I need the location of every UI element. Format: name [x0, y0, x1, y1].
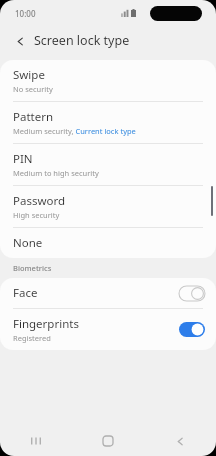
staticText: Fingerprints [13, 316, 79, 332]
staticText: Swipe [13, 67, 45, 83]
button[interactable]: Back [10, 31, 30, 51]
button[interactable]: Off [179, 286, 205, 301]
button[interactable]: Swipe [0, 60, 216, 101]
button[interactable]: Fingerprints [0, 309, 216, 350]
button[interactable]: Pattern [0, 102, 216, 143]
button[interactable]: Face [0, 278, 216, 308]
staticText: Medium to high security [13, 168, 99, 178]
staticText: Medium security, Current lock type [13, 126, 136, 136]
staticText: None [13, 235, 43, 251]
staticText: High security [13, 210, 60, 220]
staticText: 10:00 [15, 8, 36, 19]
button[interactable]: Back [144, 426, 216, 456]
staticText: No security [13, 84, 53, 94]
staticText: PIN [13, 151, 33, 167]
staticText: Screen lock type [34, 32, 130, 49]
button[interactable]: Home [72, 426, 144, 456]
button[interactable]: None [0, 228, 216, 258]
staticText: Biometrics [13, 263, 52, 273]
button[interactable]: Password [0, 186, 216, 227]
staticText: Pattern [13, 109, 54, 125]
staticText: Registered [13, 333, 51, 343]
staticText: Password [13, 193, 66, 209]
button[interactable]: PIN [0, 144, 216, 185]
button[interactable]: Recents [0, 426, 72, 456]
button[interactable]: On [179, 322, 205, 337]
staticText: Face [13, 285, 38, 301]
